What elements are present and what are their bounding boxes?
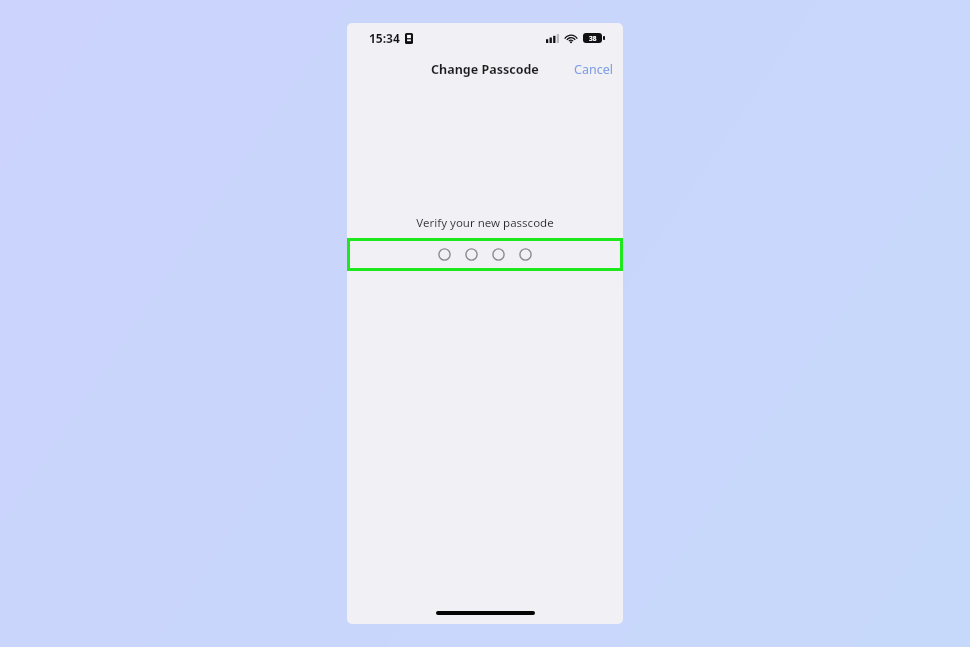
staticText: Change Passcode (431, 61, 539, 78)
button[interactable]: Cancel (564, 55, 623, 84)
button[interactable]: Passcode entry field (347, 238, 623, 271)
staticText: Verify your new passcode (347, 215, 623, 231)
staticText: Cancel (574, 61, 613, 78)
staticText: 15:34 (369, 30, 400, 46)
staticText: 38 (589, 34, 597, 43)
